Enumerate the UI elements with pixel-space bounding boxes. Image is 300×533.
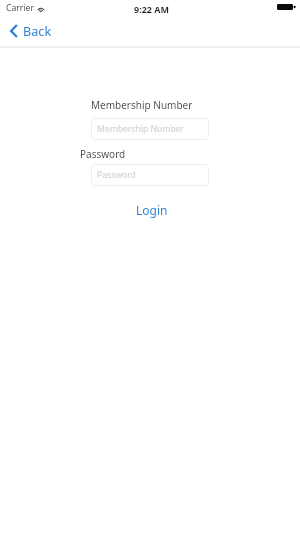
staticText: Password: [80, 147, 126, 161]
staticText: Membership Number: [97, 123, 185, 135]
button[interactable]: Password: [91, 164, 209, 186]
staticText: Back: [23, 22, 52, 39]
staticText: Password: [97, 169, 136, 181]
button[interactable]: Login: [130, 199, 174, 221]
staticText: Login: [136, 202, 168, 218]
button[interactable]: Back: [7, 20, 60, 41]
button[interactable]: Membership Number: [91, 118, 209, 140]
other: Wi-Fi signal: [37, 5, 45, 12]
other: Battery full: [277, 3, 296, 11]
staticText: Membership Number: [91, 98, 193, 112]
staticText: Carrier: [6, 2, 34, 14]
staticText: 9:22 AM: [134, 3, 170, 15]
